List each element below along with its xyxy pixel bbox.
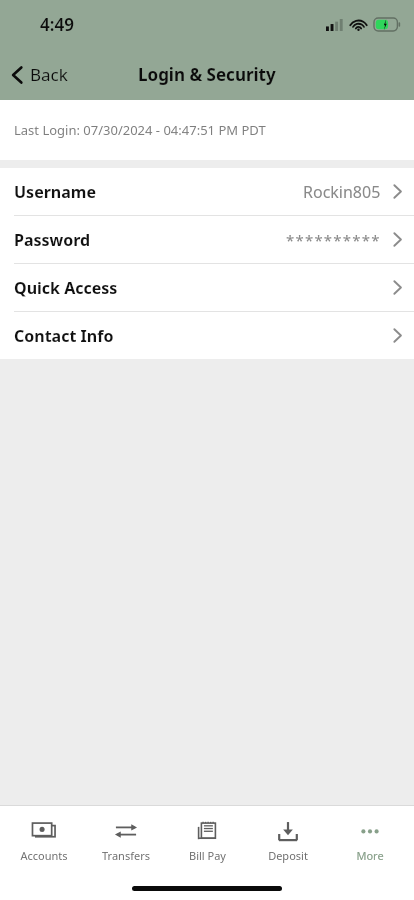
button[interactable]: Deposit — [251, 815, 325, 867]
staticText: Username — [14, 181, 96, 203]
staticText: Quick Access — [14, 277, 118, 299]
other: Accounts — [32, 822, 56, 840]
other: More — [359, 827, 381, 835]
button[interactable]: More — [333, 815, 407, 867]
button[interactable]: Transfers — [89, 815, 163, 867]
staticText: Login & Security — [138, 63, 276, 86]
button[interactable]: Password — [0, 216, 414, 263]
staticText: Accounts — [20, 848, 68, 863]
staticText: Password — [14, 229, 91, 251]
button[interactable]: Contact Info — [0, 312, 414, 359]
staticText: Bill Pay — [189, 848, 226, 863]
other: Transfers — [114, 822, 138, 840]
button[interactable]: Accounts — [7, 815, 81, 867]
staticText: Contact Info — [14, 325, 114, 347]
staticText: ********** — [286, 230, 381, 250]
staticText: Transfers — [102, 848, 150, 863]
other: Bill Pay — [197, 821, 217, 842]
button[interactable]: Back — [0, 57, 80, 92]
button[interactable]: Quick Access — [0, 264, 414, 311]
other: Deposit — [277, 821, 299, 842]
button[interactable]: Username — [0, 168, 414, 215]
staticText: Back — [30, 63, 68, 86]
button[interactable]: Bill Pay — [170, 815, 244, 867]
staticText: Rockin805 — [303, 181, 381, 203]
staticText: 4:49 — [40, 13, 74, 36]
staticText: More — [356, 848, 384, 863]
staticText: Deposit — [268, 848, 308, 863]
staticText: Last Login: 07/30/2024 - 04:47:51 PM PDT — [14, 121, 266, 139]
